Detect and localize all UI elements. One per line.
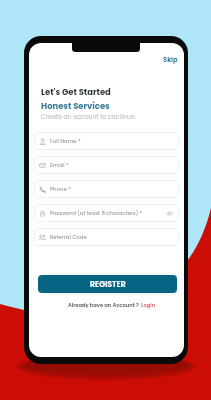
staticText: REGISTER bbox=[90, 279, 126, 290]
button[interactable]: Phone * bbox=[34, 180, 179, 198]
staticText: Create an account to continue. bbox=[41, 113, 137, 122]
staticText: Honest Services bbox=[41, 100, 110, 112]
button[interactable]: Referral Code bbox=[34, 228, 179, 246]
staticText: Login bbox=[141, 302, 156, 309]
staticText: Phone * bbox=[50, 185, 174, 193]
button[interactable]: Full Name * bbox=[34, 132, 179, 150]
button[interactable]: Email * bbox=[34, 156, 179, 174]
button[interactable]: Password (at least 8 characters) * bbox=[34, 204, 179, 222]
staticText: Email * bbox=[50, 161, 174, 169]
button[interactable]: Show password bbox=[165, 209, 174, 218]
button[interactable]: Skip bbox=[159, 53, 182, 67]
button[interactable]: REGISTER bbox=[38, 275, 177, 293]
staticText: Let's Get Started bbox=[41, 86, 111, 98]
staticText: Full Name * bbox=[50, 137, 174, 145]
staticText: Already have an Account ? bbox=[68, 302, 139, 309]
staticText: Password (at least 8 characters) * bbox=[50, 209, 165, 217]
staticText: Referral Code bbox=[50, 233, 174, 241]
button[interactable]: Login bbox=[141, 302, 156, 309]
staticText: Skip bbox=[163, 55, 178, 65]
